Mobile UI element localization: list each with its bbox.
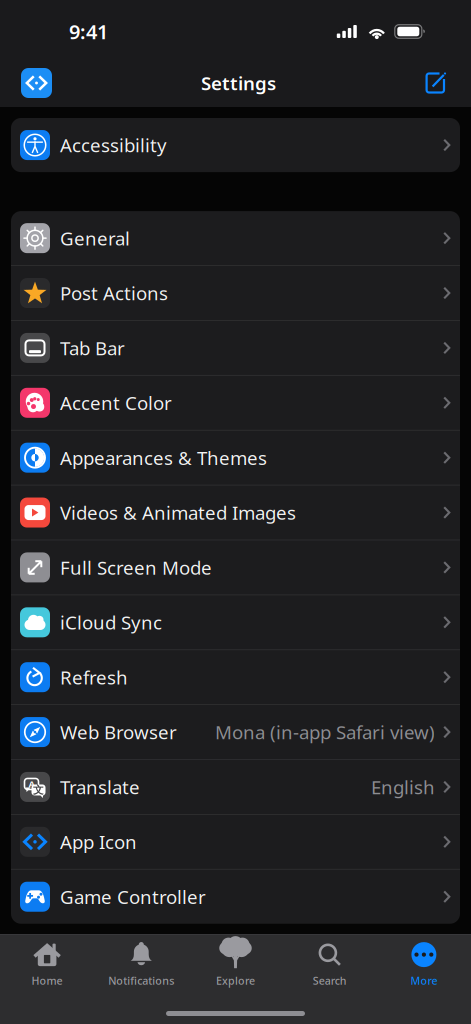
staticText: Notifications [108, 974, 174, 988]
staticText: Full Screen Mode [60, 555, 212, 580]
button[interactable]: App icon [0, 56, 64, 109]
staticText: Appearances & Themes [60, 445, 267, 470]
staticText: English [371, 775, 435, 799]
button[interactable]: Explore [188, 935, 283, 987]
staticText: 文 [33, 783, 44, 796]
staticText: Explore [216, 974, 255, 988]
button[interactable]: More [377, 935, 471, 987]
staticText: Search [313, 974, 347, 988]
staticText: General [60, 226, 130, 251]
staticText: Game Controller [60, 884, 206, 909]
staticText: Accent Color [60, 390, 172, 415]
button[interactable]: Web Browser [11, 705, 460, 759]
button[interactable]: General [11, 211, 460, 265]
staticText: Videos & Animated Images [60, 500, 296, 525]
button[interactable]: Accent Color [11, 376, 460, 430]
button[interactable]: Compose [413, 56, 471, 109]
button[interactable]: Refresh [11, 650, 460, 704]
staticText: Home [32, 974, 63, 988]
staticText: 9:41 [69, 18, 108, 45]
button[interactable]: App Icon [11, 815, 460, 869]
staticText: App Icon [60, 829, 137, 854]
staticText: Translate [60, 775, 140, 799]
staticText: Settings [201, 71, 276, 95]
button[interactable]: Post Actions [11, 266, 460, 320]
button[interactable]: Accessibility [11, 118, 460, 172]
button[interactable]: Appearances & Themes [11, 431, 460, 485]
button[interactable]: Game Controller [11, 870, 460, 924]
staticText: Web Browser [60, 720, 177, 744]
button[interactable]: Videos & Animated Images [11, 485, 460, 540]
staticText: More [410, 974, 437, 988]
button[interactable]: Home [0, 935, 94, 987]
staticText: A [28, 778, 34, 790]
button[interactable]: Notifications [94, 935, 188, 987]
button[interactable]: iCloud Sync [11, 595, 460, 649]
button[interactable]: Search [283, 935, 377, 987]
staticText: Accessibility [60, 133, 167, 157]
staticText: Mona (in-app Safari view) [215, 720, 435, 744]
staticText: Post Actions [60, 281, 168, 305]
staticText: Tab Bar [60, 335, 125, 360]
button[interactable]: A [11, 760, 460, 814]
staticText: iCloud Sync [60, 610, 162, 635]
staticText: Refresh [60, 665, 128, 690]
button[interactable]: Full Screen Mode [11, 540, 460, 594]
button[interactable]: Tab Bar [11, 321, 460, 375]
